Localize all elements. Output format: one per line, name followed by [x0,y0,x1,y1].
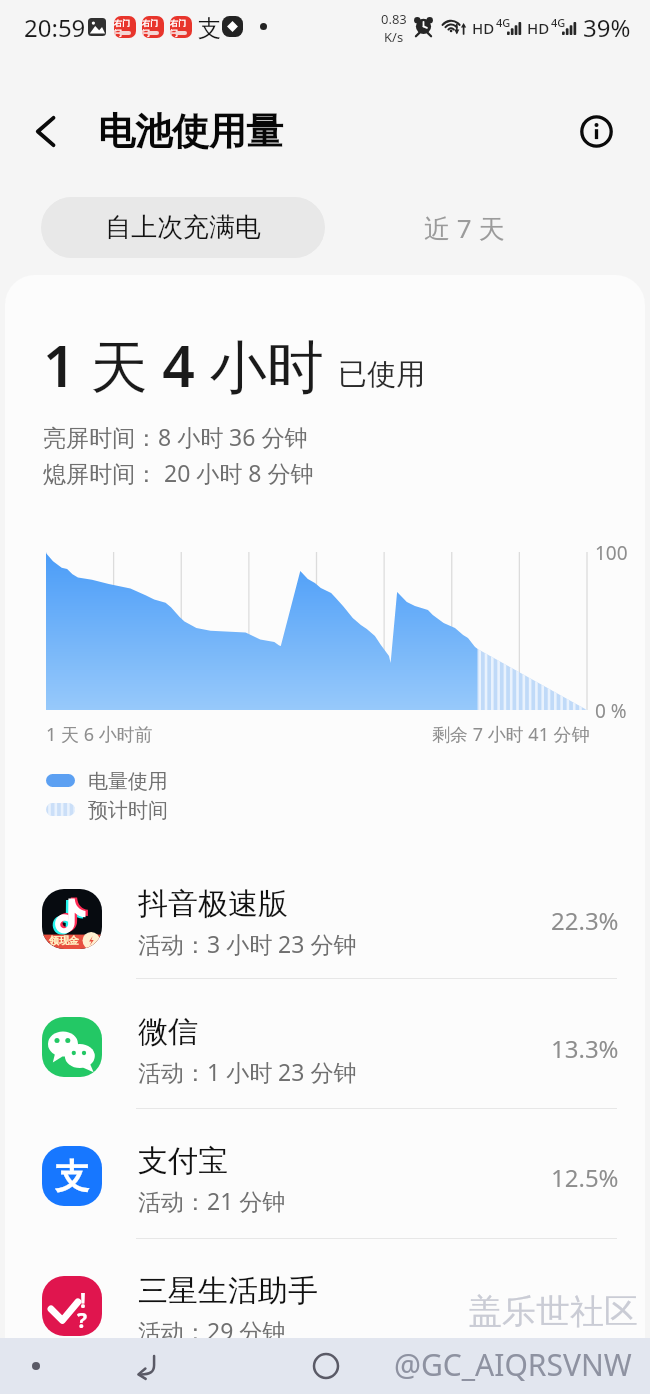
staticText: 微信 [138,1013,198,1051]
button[interactable]: 支 [5,1114,645,1236]
staticText: 活动：21 分钟 [138,1185,286,1216]
button[interactable]: Information [570,105,622,157]
staticText: 20:59 [24,11,86,44]
button[interactable]: Back [13,99,77,163]
staticText: ? [77,1306,88,1335]
staticText: 4G [496,15,511,30]
staticText: 近 7 天 [424,210,505,246]
staticText: 0.83 [381,10,407,28]
button[interactable]: 领现金 [5,857,645,979]
staticText: 0 % [595,698,627,724]
staticText: 盖乐世社区 [468,1290,638,1333]
staticText: 支 [55,1155,89,1198]
staticText: K/s [384,28,404,46]
button[interactable]: 微信 [5,985,645,1107]
staticText: 右门闩 [142,18,164,38]
button[interactable]: Menu [13,1338,58,1394]
staticText: 右门闩 [114,18,136,38]
staticText: 抖音极速版 [138,885,288,923]
staticText: 自上次充满电 [105,211,261,244]
staticText: 4G [551,15,566,30]
staticText: ! [80,1286,86,1315]
button[interactable]: Recents [576,1344,620,1388]
button[interactable]: ! [5,1244,645,1366]
staticText: 电池使用量 [98,108,283,155]
button[interactable]: 近 7 天 [325,197,604,258]
staticText: 预计时间 [88,798,168,823]
staticText: 活动：29 分钟 [138,1315,286,1346]
staticText: 39% [583,11,631,44]
staticText: 三星生活助手 [138,1272,318,1310]
staticText: @GC_AIQRSVNW [394,1344,632,1385]
staticText: 电量使用 [88,769,168,794]
staticText: 已使用 [338,356,425,393]
staticText: 亮屏时间：8 小时 36 分钟 [43,421,308,452]
staticText: 1 天 6 小时前 [46,722,153,747]
staticText: 领现金 [49,934,79,947]
staticText: 活动：1 小时 23 分钟 [138,1056,357,1087]
staticText: 1 天 4 小时 [43,326,324,404]
button[interactable]: Back [117,1338,171,1394]
staticText: 支付宝 [138,1142,228,1180]
staticText: 12.5% [551,1161,619,1194]
staticText: 剩余 7 小时 41 分钟 [432,722,590,747]
staticText: HD [527,18,550,38]
button[interactable]: 自上次充满电 [41,197,325,258]
button[interactable]: Home [299,1338,353,1394]
staticText: 13.3% [551,1032,619,1065]
staticText: 活动：3 小时 23 分钟 [138,928,357,959]
staticText: 支 [198,14,221,43]
staticText: 熄屏时间： 20 小时 8 分钟 [43,457,314,488]
staticText: 100 [595,540,628,566]
staticText: 22.3% [551,904,619,937]
staticText: HD [472,18,495,38]
staticText: 右门闩 [170,18,192,38]
